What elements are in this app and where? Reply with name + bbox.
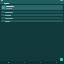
button[interactable]: Search: [61, 2, 63, 4]
button[interactable]: [1, 11, 63, 13]
button[interactable]: [1, 5, 63, 10]
staticText: Library: [4, 2, 61, 4]
button[interactable]: Browse: [16, 61, 32, 64]
button[interactable]: [1, 17, 63, 19]
button[interactable]: Profile: [48, 61, 64, 64]
button[interactable]: Saved: [32, 61, 48, 64]
button[interactable]: [1, 20, 63, 22]
button[interactable]: [1, 14, 63, 16]
button[interactable]: Home: [0, 61, 16, 64]
button[interactable]: Add: [60, 58, 63, 61]
button[interactable]: Menu: [1, 2, 3, 4]
